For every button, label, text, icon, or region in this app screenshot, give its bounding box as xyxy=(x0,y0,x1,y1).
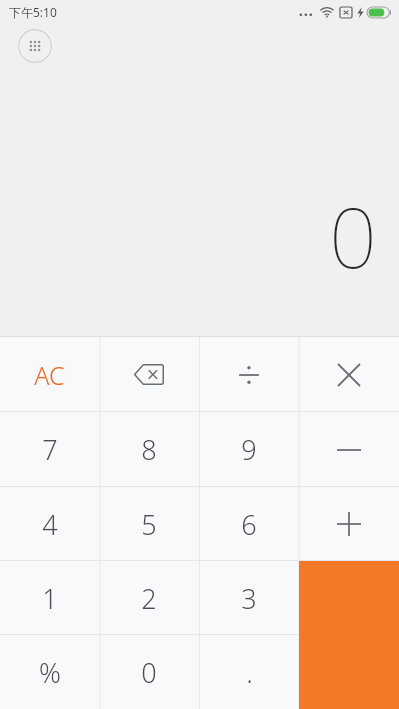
staticText: 1 xyxy=(42,580,58,617)
button[interactable]: 1 xyxy=(0,561,99,635)
button[interactable]: Divide xyxy=(199,337,299,412)
button[interactable]: 0 xyxy=(99,635,199,709)
staticText: 9 xyxy=(241,431,257,468)
button[interactable]: 3 xyxy=(199,561,299,635)
button[interactable]: % xyxy=(0,635,99,709)
staticText: . xyxy=(246,654,253,691)
staticText: 4 xyxy=(42,506,58,543)
button[interactable]: Menu xyxy=(18,29,52,63)
staticText: 2 xyxy=(141,580,157,617)
button[interactable]: 9 xyxy=(199,412,299,487)
button[interactable]: AC xyxy=(0,337,99,412)
staticText: 0 xyxy=(141,654,157,691)
button[interactable]: 2 xyxy=(99,561,199,635)
button[interactable]: 4 xyxy=(0,487,99,561)
button[interactable]: 8 xyxy=(99,412,199,487)
button[interactable]: 5 xyxy=(99,487,199,561)
button[interactable]: Minus xyxy=(299,412,399,487)
staticText: AC xyxy=(34,358,65,392)
staticText: 下午5:10 xyxy=(9,4,57,20)
button[interactable]: Multiply xyxy=(299,337,399,412)
button[interactable]: Backspace xyxy=(99,337,199,412)
staticText: 0 xyxy=(329,178,377,292)
staticText: % xyxy=(39,654,61,691)
staticText: 3 xyxy=(241,580,257,617)
staticText: 6 xyxy=(241,506,257,543)
staticText: 5 xyxy=(141,506,157,543)
staticText: 7 xyxy=(42,431,58,468)
staticText: 8 xyxy=(141,431,157,468)
button[interactable]: Plus xyxy=(299,487,399,561)
button[interactable]: . xyxy=(199,635,299,709)
button[interactable]: 6 xyxy=(199,487,299,561)
button[interactable]: 7 xyxy=(0,412,99,487)
